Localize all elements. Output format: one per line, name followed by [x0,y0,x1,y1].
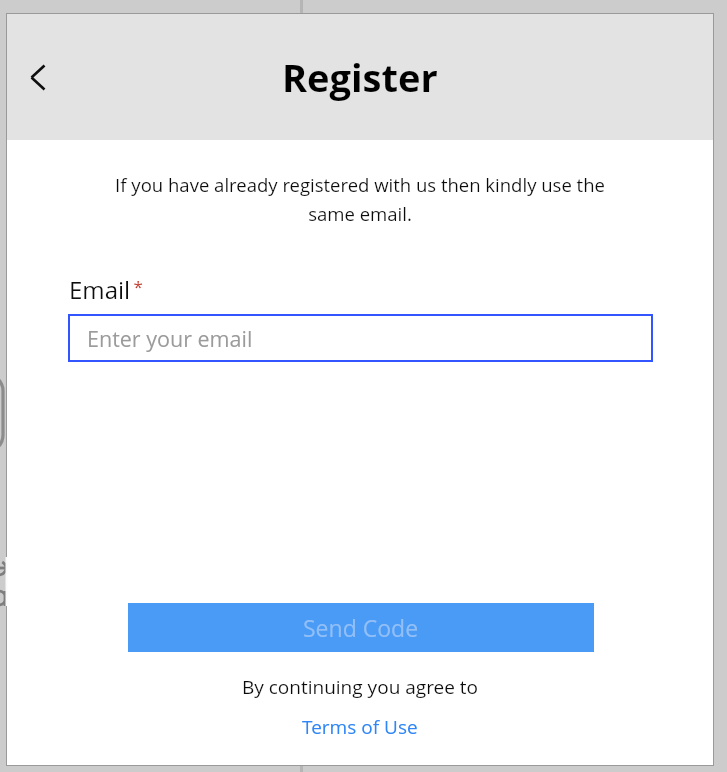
staticText: Send Code [303,612,419,643]
staticText: Terms of Use [302,714,418,740]
staticText: Register [282,51,438,103]
button[interactable]: Enter your email [68,314,653,362]
staticText: If you have already registered with us t… [7,172,713,226]
staticText: By continuing you agree to [7,674,713,700]
button[interactable]: Send Code [128,603,594,652]
staticText: Email * [69,273,142,306]
staticText: Enter your email [87,324,253,353]
button[interactable]: Back [14,53,62,101]
button[interactable]: Terms of Use [296,712,424,742]
